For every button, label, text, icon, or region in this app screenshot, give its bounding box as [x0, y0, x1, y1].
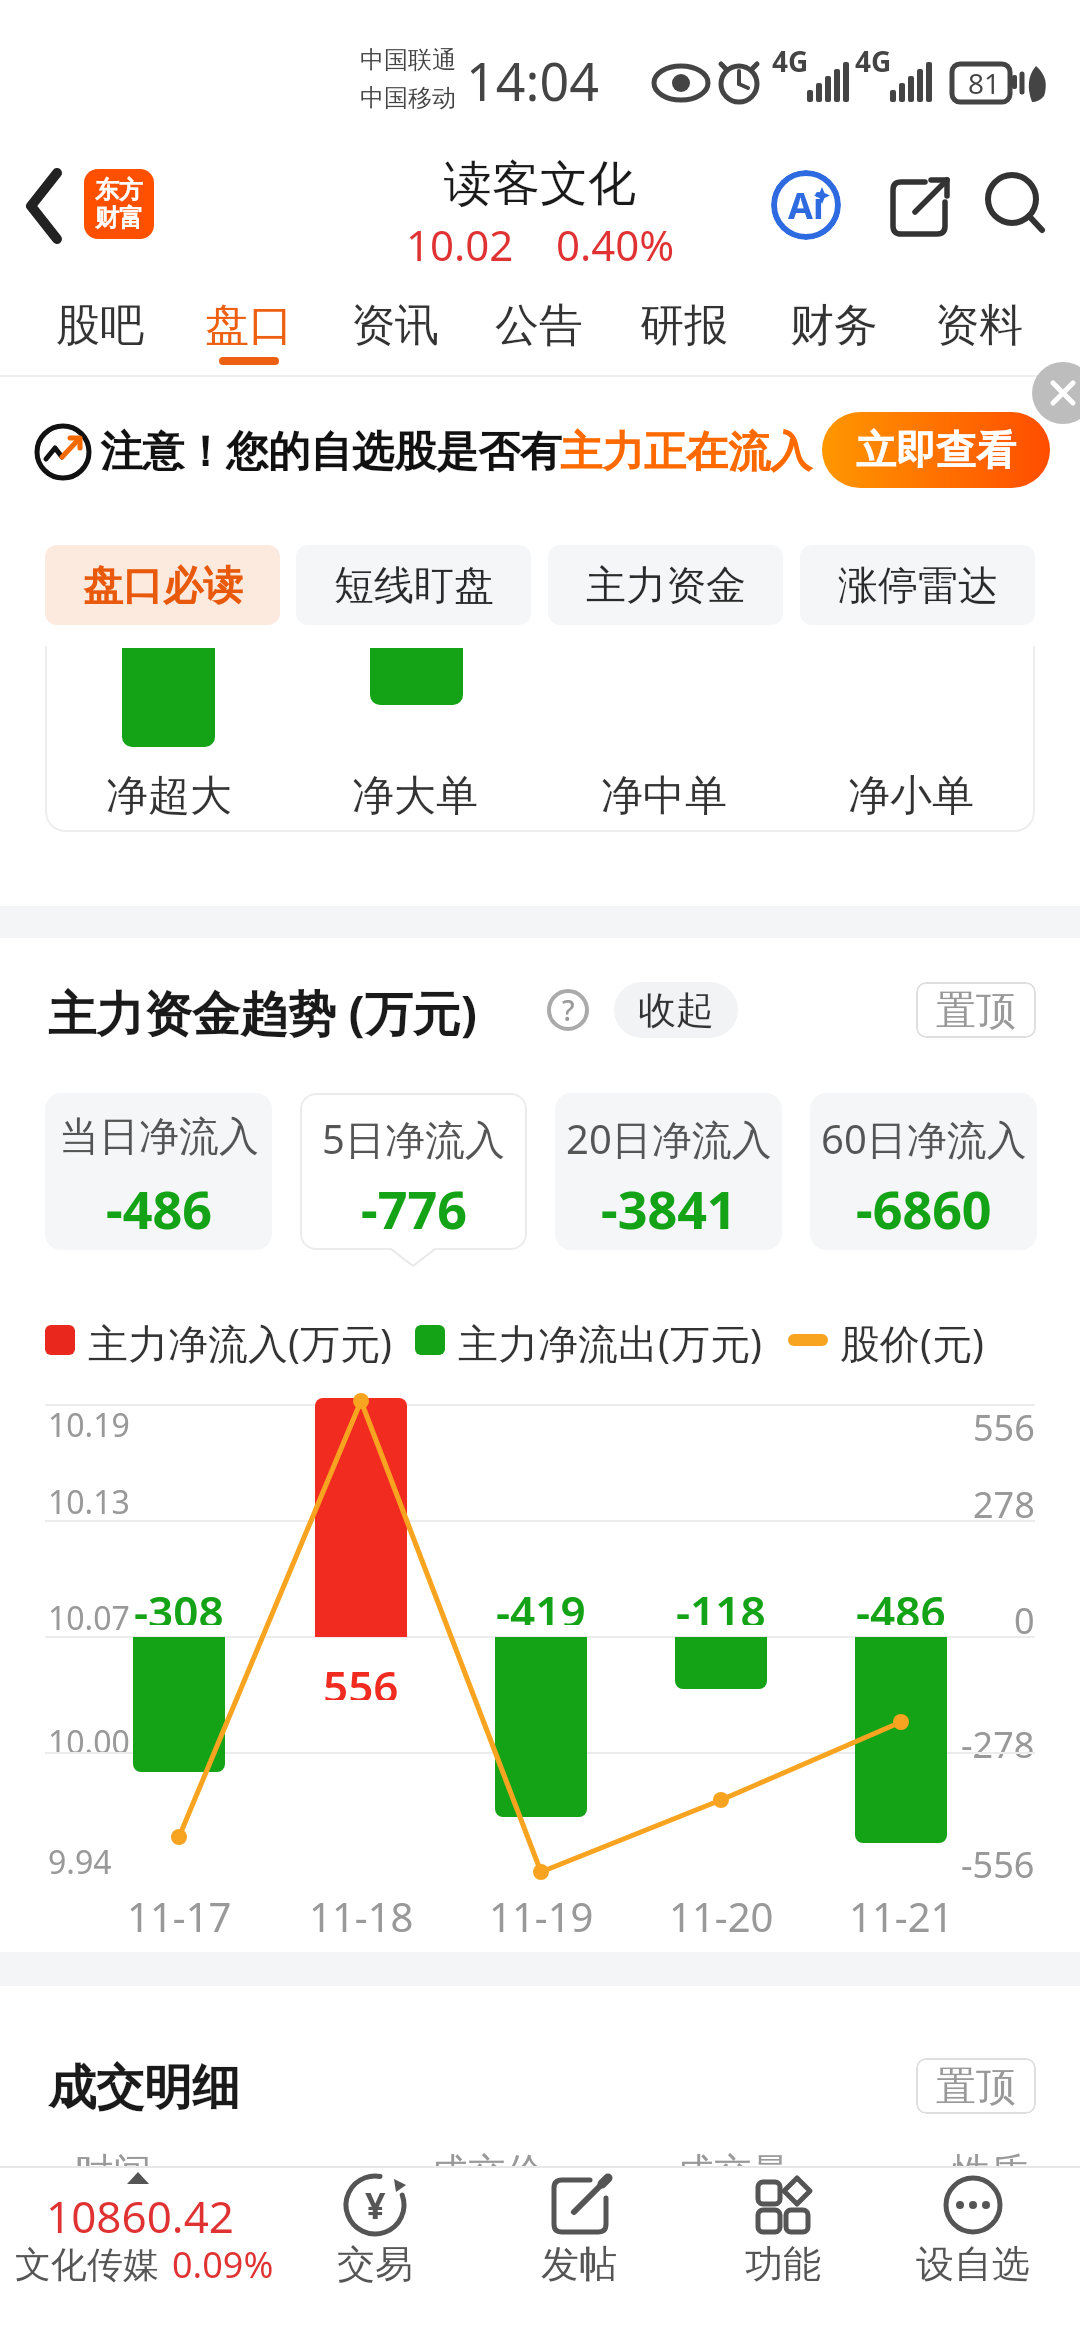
button[interactable]: 股吧	[30, 290, 170, 360]
button[interactable]: 发帖	[484, 2170, 674, 2336]
button[interactable]: 收起	[614, 982, 738, 1038]
button[interactable]: 主力资金	[548, 545, 783, 625]
staticText: 10.00	[48, 1720, 130, 1764]
button[interactable]: 10860.42	[10, 2170, 295, 2336]
staticText: 净超大	[106, 770, 232, 820]
button[interactable]: 5日净流入	[300, 1093, 527, 1250]
staticText: 4G	[855, 42, 892, 72]
button[interactable]	[10, 160, 80, 250]
button[interactable]: 功能	[688, 2170, 878, 2336]
staticText: -776	[361, 1173, 467, 1235]
staticText: 时间	[75, 2148, 151, 2192]
staticText: 涨停雷达	[838, 560, 998, 610]
staticText: 股价(元)	[840, 1315, 984, 1365]
staticText: 11-20	[669, 1889, 774, 1933]
staticText: 股吧	[56, 298, 144, 353]
staticText: 净小单	[848, 770, 974, 820]
button[interactable]	[980, 170, 1050, 240]
staticText: 9.94	[48, 1840, 112, 1884]
staticText: 东方	[95, 175, 143, 205]
staticText: 4G	[772, 42, 809, 72]
button[interactable]: 置顶	[916, 2058, 1036, 2114]
staticText: 置顶	[936, 985, 1016, 1035]
staticText: 主力净流出(万元)	[458, 1315, 762, 1365]
button[interactable]: 置顶	[916, 982, 1036, 1038]
staticText: -486	[106, 1173, 212, 1235]
staticText: 资料	[935, 298, 1023, 353]
staticText: -278	[961, 1720, 1035, 1764]
button[interactable]	[1030, 378, 1080, 426]
staticText: 当日净流入	[59, 1111, 259, 1161]
staticText: 278	[973, 1480, 1035, 1524]
staticText: -308	[134, 1581, 224, 1625]
staticText: 收起	[638, 986, 714, 1034]
staticText: 主力资金	[586, 560, 746, 610]
staticText: 文化传媒	[15, 2242, 159, 2287]
staticText: 10.19	[48, 1403, 130, 1447]
button[interactable]: 60日净流入	[810, 1093, 1037, 1250]
staticText: -419	[496, 1581, 586, 1625]
button[interactable]: 盘口	[179, 290, 319, 360]
staticText: -6860	[856, 1173, 992, 1235]
staticText: 5日净流入	[322, 1111, 505, 1161]
button[interactable]: Ai	[771, 170, 841, 240]
staticText: 置顶	[936, 2061, 1016, 2111]
button[interactable]: 20日净流入	[555, 1093, 782, 1250]
staticText: 研报	[640, 298, 728, 353]
staticText: 发帖	[541, 2240, 617, 2288]
staticText: 交易	[337, 2240, 413, 2288]
staticText: ?	[562, 991, 575, 1029]
staticText: 60日净流入	[821, 1111, 1027, 1161]
button[interactable]: 立即查看	[822, 412, 1050, 488]
staticText: 20日净流入	[566, 1111, 772, 1161]
staticText: 主力净流入(万元)	[88, 1315, 392, 1365]
button[interactable]: 当日净流入	[45, 1093, 272, 1250]
button[interactable]: 交易	[280, 2170, 470, 2336]
staticText: 10860.42	[46, 2186, 234, 2238]
button[interactable]: 东方	[84, 169, 154, 239]
staticText: 财富	[95, 203, 143, 233]
staticText: 14:04	[466, 45, 599, 116]
button[interactable]: 设自选	[878, 2170, 1068, 2336]
staticText: 556	[323, 1656, 399, 1700]
staticText: 功能	[745, 2240, 821, 2288]
staticText: 读客文化	[444, 154, 636, 214]
button[interactable]: 涨停雷达	[800, 545, 1035, 625]
staticText: 财务	[790, 298, 878, 353]
staticText: 性质	[952, 2148, 1028, 2192]
staticText: 11-17	[127, 1889, 232, 1933]
button[interactable]	[885, 170, 955, 240]
staticText: 11-18	[309, 1889, 414, 1933]
staticText: 556	[973, 1403, 1035, 1447]
button[interactable]: 公告	[469, 290, 609, 360]
staticText: 净中单	[601, 770, 727, 820]
button[interactable]: 资料	[909, 290, 1049, 360]
staticText: 10.02	[406, 216, 514, 273]
staticText: 11-21	[849, 1889, 954, 1933]
button[interactable]: 短线盯盘	[296, 545, 531, 625]
staticText: 成交价	[430, 2148, 544, 2192]
staticText: 立即查看	[856, 425, 1016, 475]
button[interactable]: 研报	[614, 290, 754, 360]
staticText: 中国移动	[360, 83, 456, 113]
staticText: ¥	[365, 2181, 386, 2230]
staticText: -486	[856, 1581, 946, 1625]
staticText: 盘口	[205, 298, 293, 353]
staticText: 中国联通	[360, 45, 456, 75]
staticText: -556	[961, 1840, 1035, 1884]
staticText: -3841	[601, 1173, 737, 1235]
staticText: 设自选	[916, 2240, 1030, 2288]
staticText: 成交明细	[48, 2058, 240, 2114]
staticText: 0.40%	[556, 216, 675, 273]
button[interactable]: 资讯	[325, 290, 465, 360]
staticText: -118	[676, 1581, 766, 1625]
staticText: 公告	[495, 298, 583, 353]
button[interactable]: 盘口必读	[45, 545, 280, 625]
staticText: 主力正在流入	[560, 426, 812, 479]
button[interactable]: 财务	[764, 290, 904, 360]
staticText: 净大单	[352, 770, 478, 820]
staticText: 81	[968, 64, 1001, 100]
staticText: 10.07	[48, 1596, 130, 1640]
staticText: 11-19	[489, 1889, 594, 1933]
staticText: 成交量	[676, 2148, 790, 2192]
